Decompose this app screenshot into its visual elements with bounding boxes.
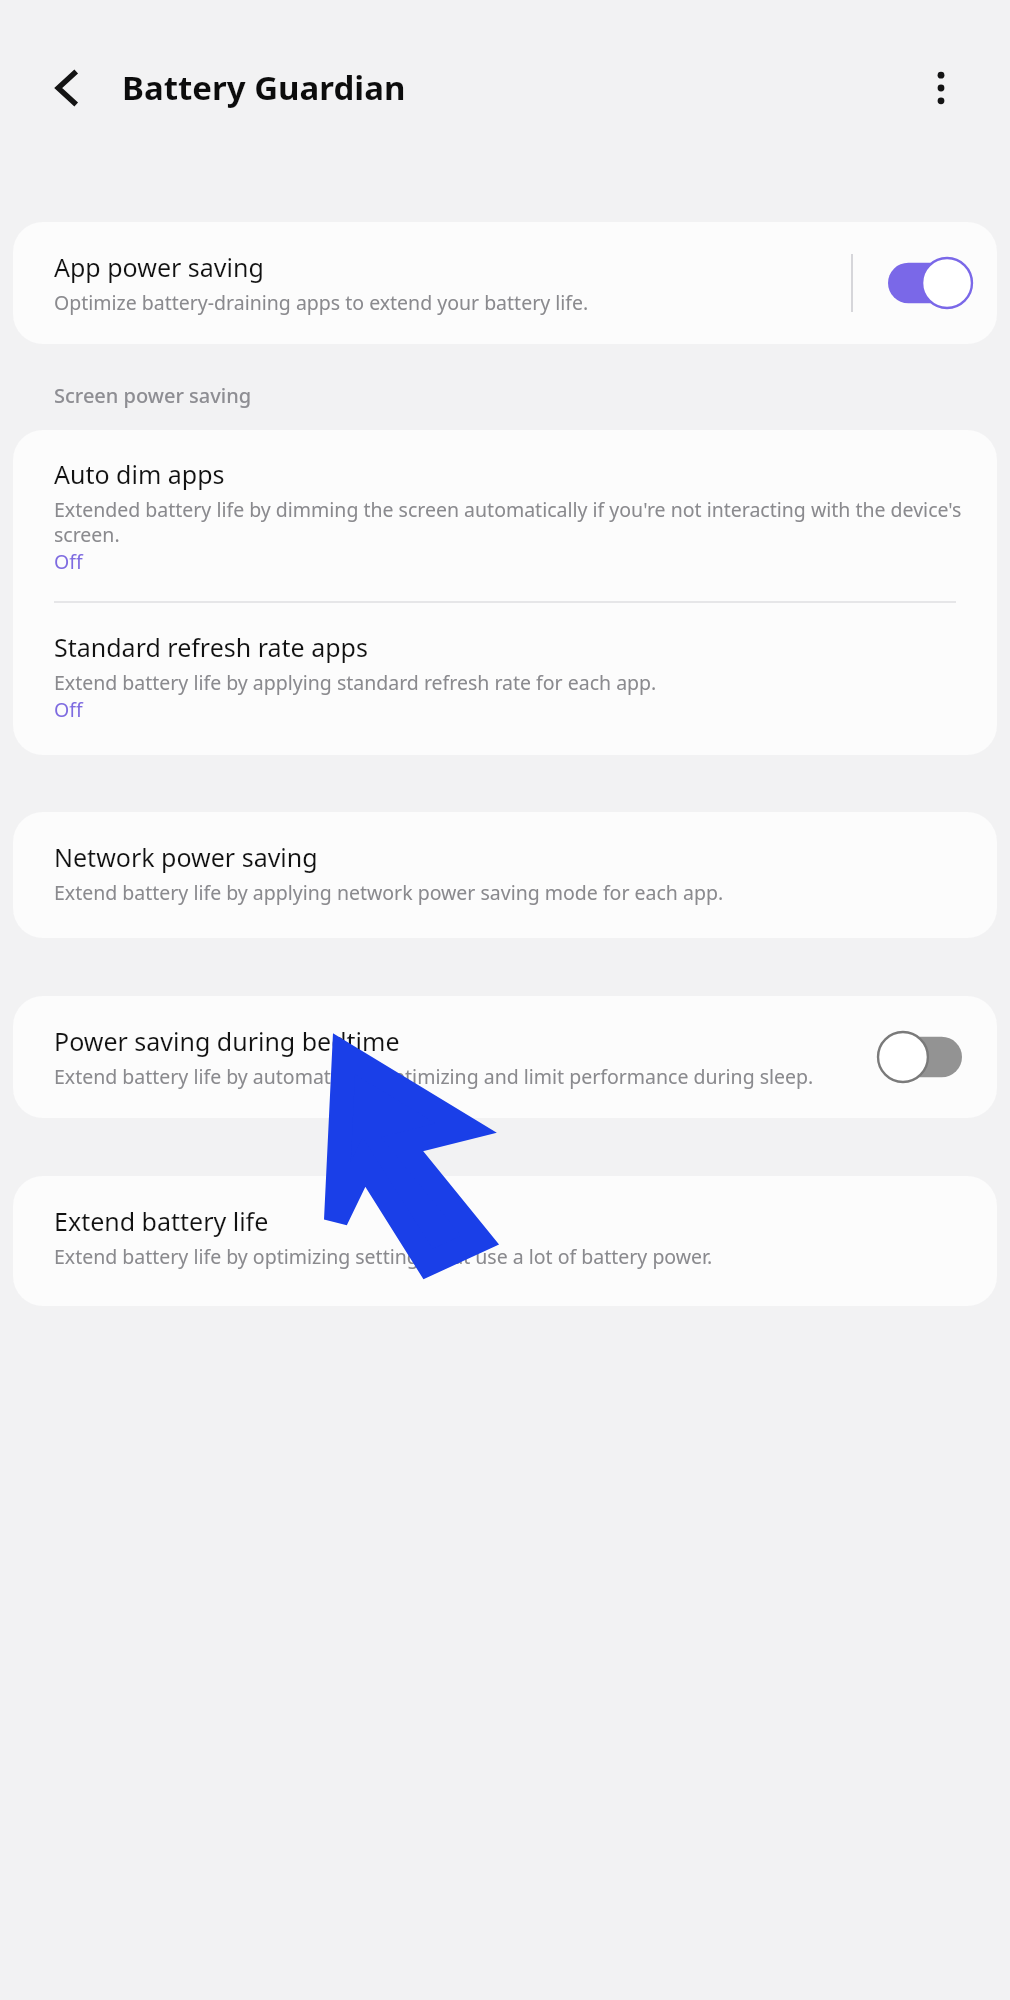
staticText: Extend battery life by automatically opt… — [54, 1063, 814, 1090]
button[interactable]: Standard refresh rate apps — [13, 603, 997, 755]
staticText: Power saving during bedtime — [54, 1024, 400, 1058]
staticText: Optimize battery-draining apps to extend… — [54, 289, 589, 316]
staticText: Standard refresh rate apps — [54, 630, 368, 664]
button[interactable]: Power saving during bedtime — [13, 996, 997, 1118]
button[interactable]: Back — [38, 57, 100, 119]
staticText: Extend battery life by optimizing settin… — [54, 1243, 713, 1270]
staticText: Extend battery life — [54, 1204, 269, 1238]
button[interactable]: Extend battery life — [13, 1176, 997, 1306]
staticText: Battery Guardian — [122, 65, 406, 110]
button[interactable]: More options — [904, 51, 978, 125]
staticText: App power saving — [54, 250, 264, 284]
staticText: Auto dim apps — [54, 457, 225, 491]
button[interactable]: Network power saving — [13, 812, 997, 938]
staticText: Extended battery life by dimming the scr… — [54, 496, 965, 548]
staticText: Network power saving — [54, 840, 318, 874]
button[interactable]: App power saving toggle, on — [875, 254, 975, 312]
staticText: Off — [54, 548, 83, 575]
staticText: Extend battery life by applying standard… — [54, 669, 657, 696]
button[interactable]: App power saving — [13, 222, 997, 344]
button[interactable]: Power saving during bedtime toggle, off — [875, 1028, 975, 1086]
staticText: Extend battery life by applying network … — [54, 879, 724, 906]
staticText: Off — [54, 696, 83, 723]
button[interactable]: Auto dim apps — [13, 430, 997, 601]
staticText: Screen power saving — [54, 382, 252, 409]
